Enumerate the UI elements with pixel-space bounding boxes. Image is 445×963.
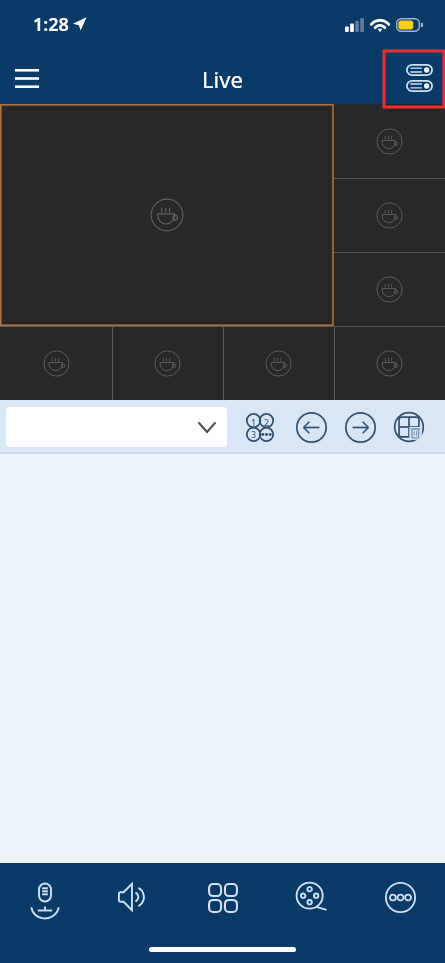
button[interactable]: Next page <box>338 405 382 449</box>
button[interactable]: Talk <box>0 868 89 926</box>
button[interactable]: Clear layout <box>387 405 431 449</box>
button[interactable]: Menu <box>3 54 51 102</box>
staticText: 1 <box>251 416 257 428</box>
button[interactable]: Select view <box>6 407 227 447</box>
button[interactable]: Camera 3 <box>334 178 445 252</box>
button[interactable]: Servers <box>393 51 445 104</box>
staticText: Live <box>202 64 243 94</box>
button[interactable]: Previous page <box>289 405 333 449</box>
button[interactable]: More <box>356 868 445 926</box>
button[interactable]: Camera 5 <box>0 326 112 400</box>
button[interactable]: Camera 2 <box>334 104 445 178</box>
button[interactable]: Camera 7 <box>223 326 334 400</box>
button[interactable]: Camera 4 <box>334 252 445 326</box>
button[interactable]: Camera 1 <box>0 104 334 326</box>
staticText: 1:28 <box>33 12 69 37</box>
button[interactable]: Layout <box>178 868 267 926</box>
staticText: 3 <box>251 428 257 440</box>
staticText: 2 <box>264 416 270 428</box>
button[interactable]: Audio <box>89 868 178 926</box>
button[interactable]: Camera 6 <box>112 326 223 400</box>
button[interactable]: Camera 8 <box>334 326 445 400</box>
button[interactable]: Playback <box>267 868 356 926</box>
button[interactable]: Presets <box>238 405 282 449</box>
